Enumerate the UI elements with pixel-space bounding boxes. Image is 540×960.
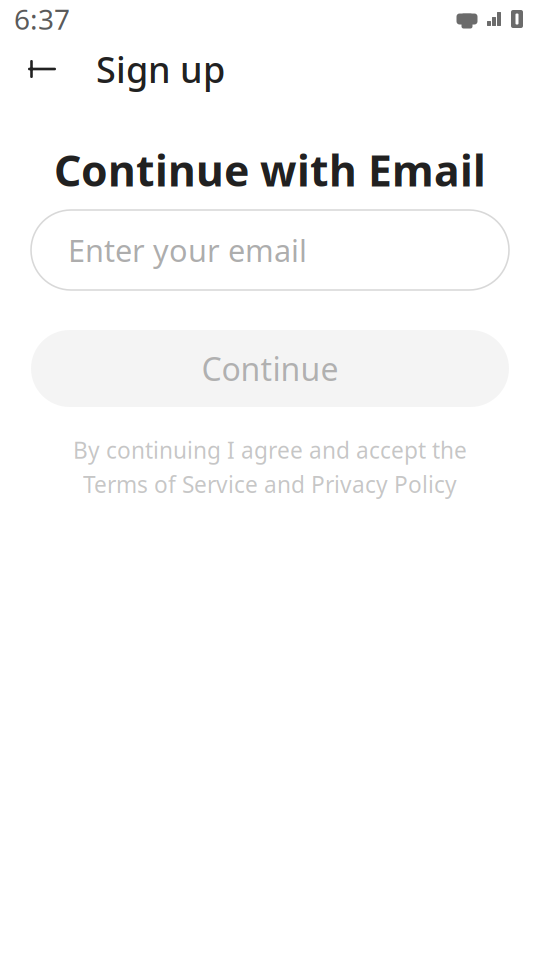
staticText: Enter your email <box>68 230 307 270</box>
staticText: Continue with Email <box>54 142 486 198</box>
button[interactable]: Back <box>14 41 70 97</box>
staticText: Sign up <box>96 45 225 93</box>
staticText: 6:37 <box>14 0 70 38</box>
button[interactable]: Enter your email <box>31 210 509 290</box>
button[interactable]: Terms of Service and Privacy Policy <box>83 469 457 499</box>
staticText: By continuing I agree and accept the <box>73 435 467 465</box>
staticText: Continue <box>201 347 338 390</box>
button[interactable]: Continue <box>31 330 509 407</box>
staticText: Terms of Service and Privacy Policy <box>83 469 457 499</box>
